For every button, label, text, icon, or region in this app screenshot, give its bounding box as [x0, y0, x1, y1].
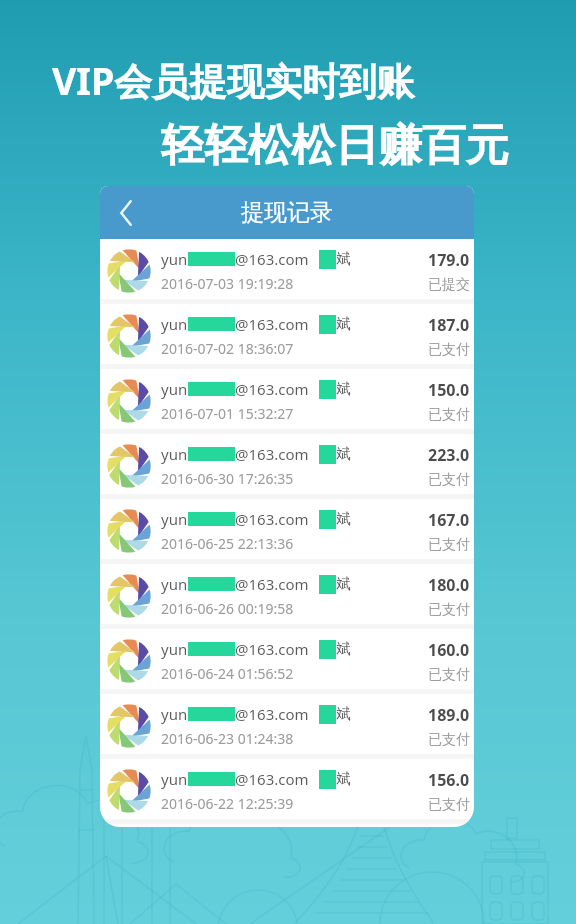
staticText: 斌	[336, 705, 351, 724]
staticText: @163.com	[235, 704, 309, 724]
staticText: 已支付	[428, 601, 470, 619]
staticText: yun	[161, 314, 188, 334]
staticText: 179.0	[428, 249, 470, 271]
staticText: 2016-07-02 18:36:07	[161, 339, 294, 358]
staticText: 160.0	[428, 639, 470, 661]
button[interactable]: yun	[100, 369, 474, 434]
staticText: 223.0	[428, 444, 470, 466]
staticText: yun	[161, 769, 188, 789]
staticText: 已提交	[428, 276, 470, 294]
button[interactable]: yun	[100, 694, 474, 759]
button[interactable]: yun	[100, 499, 474, 564]
staticText: yun	[161, 444, 188, 464]
staticText: 2016-06-26 00:19:58	[161, 599, 294, 618]
staticText: @163.com	[235, 769, 309, 789]
staticText: 提现记录	[241, 198, 333, 227]
staticText: 2016-06-23 01:24:38	[161, 729, 294, 748]
staticText: @163.com	[235, 509, 309, 529]
staticText: 2016-07-01 15:32:27	[161, 404, 294, 423]
staticText: yun	[161, 379, 188, 399]
staticText: 2016-06-22 12:25:39	[161, 794, 294, 813]
staticText: 斌	[336, 250, 351, 269]
staticText: 156.0	[428, 769, 470, 791]
button[interactable]: Back	[100, 186, 152, 239]
staticText: @163.com	[235, 574, 309, 594]
staticText: 斌	[336, 640, 351, 659]
staticText: @163.com	[235, 249, 309, 269]
staticText: 已支付	[428, 731, 470, 749]
button[interactable]: yun	[100, 239, 474, 304]
staticText: @163.com	[235, 379, 309, 399]
staticText: 已支付	[428, 341, 470, 359]
staticText: @163.com	[235, 639, 309, 659]
staticText: 2016-06-30 17:26:35	[161, 469, 294, 488]
staticText: 189.0	[428, 704, 470, 726]
staticText: yun	[161, 639, 188, 659]
staticText: 187.0	[428, 314, 470, 336]
staticText: 167.0	[428, 509, 470, 531]
staticText: 2016-07-03 19:19:28	[161, 274, 294, 293]
staticText: 已支付	[428, 796, 470, 814]
staticText: @163.com	[235, 314, 309, 334]
staticText: 已支付	[428, 536, 470, 554]
staticText: 斌	[336, 380, 351, 399]
button[interactable]: yun	[100, 434, 474, 499]
staticText: @163.com	[235, 444, 309, 464]
staticText: 150.0	[428, 379, 470, 401]
staticText: yun	[161, 704, 188, 724]
staticText: 已支付	[428, 666, 470, 684]
button[interactable]: yun	[100, 304, 474, 369]
staticText: 2016-06-24 01:56:52	[161, 664, 294, 683]
staticText: 斌	[336, 770, 351, 789]
staticText: 180.0	[428, 574, 470, 596]
button[interactable]: yun	[100, 564, 474, 629]
staticText: VIP会员提现实时到账	[52, 55, 415, 106]
button[interactable]: yun	[100, 759, 474, 824]
staticText: 斌	[336, 315, 351, 334]
staticText: 2016-06-25 22:13:36	[161, 534, 294, 553]
staticText: 轻轻松松日赚百元	[161, 118, 509, 173]
button[interactable]: yun	[100, 629, 474, 694]
staticText: yun	[161, 574, 188, 594]
staticText: 已支付	[428, 471, 470, 489]
staticText: 斌	[336, 575, 351, 594]
staticText: yun	[161, 249, 188, 269]
staticText: 斌	[336, 445, 351, 464]
staticText: 已支付	[428, 406, 470, 424]
staticText: yun	[161, 509, 188, 529]
staticText: 斌	[336, 510, 351, 529]
